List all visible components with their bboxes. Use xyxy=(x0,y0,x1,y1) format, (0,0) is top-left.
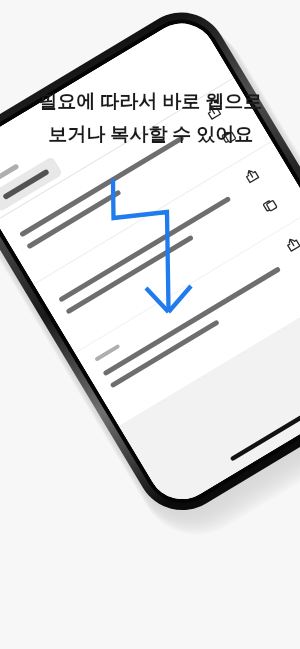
staticText: 필요에 따라서 바로 웹으로 xyxy=(38,88,262,114)
staticText: 보거나 복사할 수 있어요 xyxy=(48,121,253,147)
other: Arrow pointing to copy button xyxy=(0,0,300,649)
